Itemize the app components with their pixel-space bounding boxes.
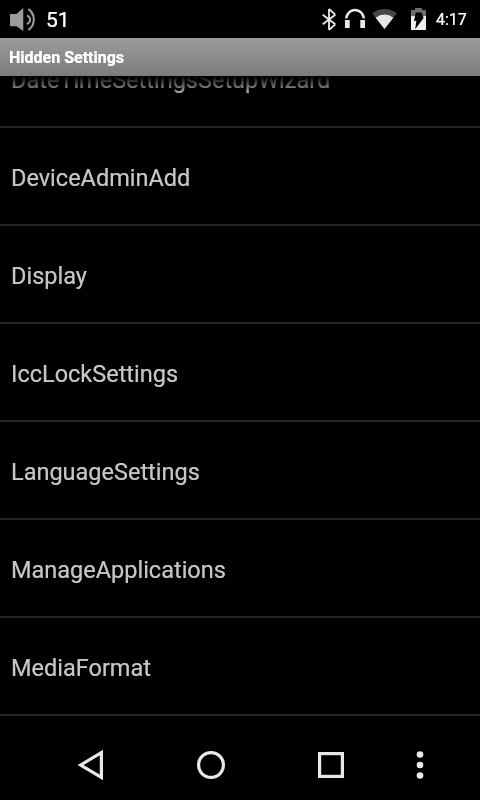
staticText: ManageApplications (11, 556, 226, 584)
staticText: Display (11, 262, 87, 290)
staticText: Hidden Settings (9, 48, 125, 67)
button[interactable]: DeviceAdminAdd (0, 128, 480, 226)
staticText: MediaFormat (11, 654, 151, 682)
button[interactable]: IccLockSettings (0, 324, 480, 422)
button[interactable]: More options (395, 740, 444, 789)
button[interactable]: Back (60, 740, 121, 789)
button[interactable]: Recent apps (300, 740, 361, 789)
staticText: LanguageSettings (11, 458, 200, 486)
staticText: DeviceAdminAdd (11, 164, 191, 192)
staticText: 51 (46, 8, 70, 33)
staticText: 4:17 (436, 10, 467, 29)
button[interactable]: MediaFormat (0, 618, 480, 715)
button[interactable]: ManageApplications (0, 520, 480, 618)
button[interactable]: LanguageSettings (0, 422, 480, 520)
staticText: DateTimeSettingsSetupWizard (11, 76, 331, 94)
button[interactable]: DateTimeSettingsSetupWizard (0, 76, 480, 128)
button[interactable]: Home (180, 740, 241, 789)
button[interactable]: Display (0, 226, 480, 324)
staticText: IccLockSettings (11, 360, 179, 388)
